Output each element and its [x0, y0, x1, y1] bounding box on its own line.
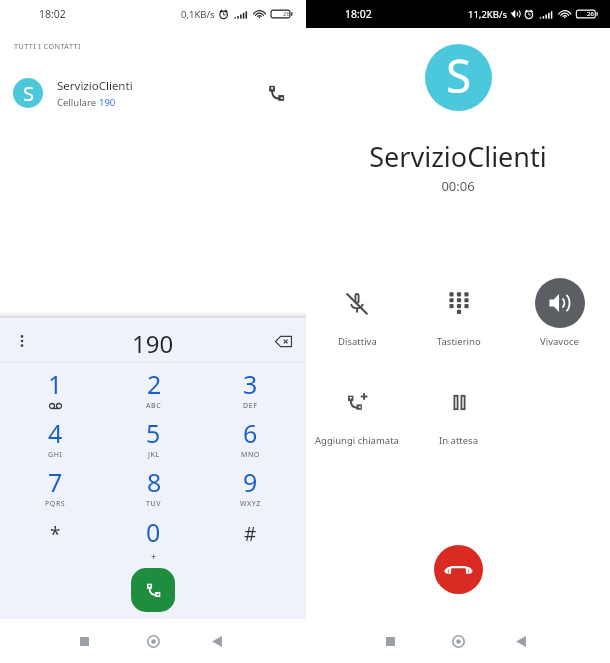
button[interactable]: Recents	[374, 625, 406, 657]
staticText: Aggiungi chiamata	[315, 434, 399, 447]
button[interactable]: 1	[0, 367, 111, 413]
staticText: 0	[146, 515, 161, 549]
staticText: GHI	[48, 450, 63, 460]
button[interactable]: 5	[98, 416, 209, 462]
button[interactable]: Back	[505, 625, 537, 657]
staticText: 8	[147, 465, 162, 499]
staticText: Disattiva	[338, 335, 377, 348]
staticText: S	[446, 44, 472, 107]
staticText: Cellulare	[57, 96, 99, 109]
staticText: 18:02	[345, 7, 372, 21]
button[interactable]: S	[0, 70, 306, 116]
staticText: 26	[283, 10, 290, 18]
button[interactable]: Disattiva	[306, 278, 408, 348]
button[interactable]: Backspace	[268, 326, 298, 356]
button[interactable]: Aggiungi chiamata	[306, 377, 408, 447]
staticText: WXYZ	[240, 499, 261, 509]
staticText: 1	[48, 367, 63, 401]
staticText: 0,1KB/s	[181, 8, 215, 21]
staticText: 5	[146, 416, 161, 450]
button[interactable]: Call	[257, 74, 295, 112]
staticText: 26	[587, 10, 594, 18]
button[interactable]: #	[195, 515, 306, 561]
staticText: TUV	[146, 499, 162, 509]
button[interactable]: Back	[201, 625, 233, 657]
staticText: ServizioClienti	[306, 138, 610, 175]
staticText: ServizioClienti	[57, 78, 133, 94]
staticText: S	[23, 80, 34, 107]
button[interactable]: 3	[195, 367, 306, 413]
staticText: +	[151, 550, 157, 561]
staticText: 2	[147, 367, 162, 401]
staticText: JKL	[148, 450, 160, 460]
staticText: 9	[243, 465, 258, 499]
staticText: In attesa	[439, 434, 478, 447]
staticText: #	[244, 521, 257, 547]
button[interactable]: 0	[98, 515, 209, 561]
staticText: 4	[48, 416, 63, 450]
button[interactable]: 9	[195, 465, 306, 511]
staticText: 7	[48, 465, 63, 499]
button[interactable]: Recents	[68, 625, 100, 657]
button[interactable]: More options	[7, 326, 37, 356]
staticText: 3	[243, 367, 258, 401]
staticText: 6	[243, 416, 258, 450]
button[interactable]: 2	[98, 367, 209, 413]
staticText: DEF	[243, 401, 258, 411]
button[interactable]: *	[0, 515, 111, 561]
button[interactable]: 7	[0, 465, 111, 511]
staticText: 00:06	[306, 177, 610, 195]
button[interactable]: 4	[0, 416, 111, 462]
staticText: *	[50, 521, 61, 547]
staticText: MNO	[241, 450, 260, 460]
button[interactable]: Home	[137, 625, 169, 657]
staticText: Tastierino	[437, 335, 481, 348]
button[interactable]: 6	[195, 416, 306, 462]
button[interactable]: Tastierino	[408, 278, 509, 348]
button[interactable]: 8	[98, 465, 209, 511]
button[interactable]: Vivavoce	[509, 278, 610, 348]
staticText: TUTTI I CONTATTI	[14, 41, 81, 51]
staticText: Vivavoce	[540, 335, 579, 348]
button[interactable]: In attesa	[408, 377, 509, 447]
staticText: 190	[132, 327, 174, 360]
staticText: PQRS	[45, 499, 66, 509]
staticText: ABC	[146, 401, 162, 411]
button[interactable]: End call	[434, 545, 483, 594]
staticText: 11,2KB/s	[468, 8, 507, 21]
staticText: 18:02	[39, 7, 66, 21]
staticText: 190	[99, 96, 116, 109]
button[interactable]: Call	[131, 568, 175, 612]
button[interactable]: Home	[442, 625, 474, 657]
